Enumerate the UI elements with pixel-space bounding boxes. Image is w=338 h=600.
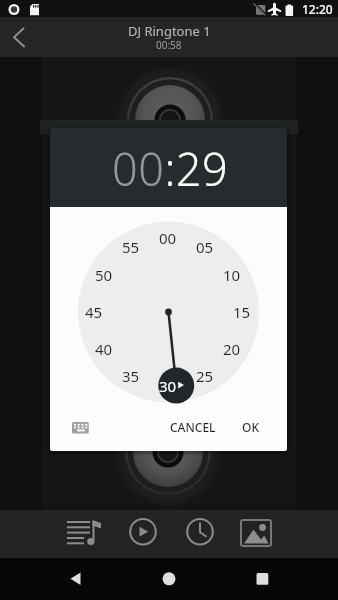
button[interactable]	[122, 514, 166, 554]
staticText: 12:20	[302, 1, 333, 17]
staticText: DJ Ringtone 1	[128, 22, 211, 40]
staticText: 10	[223, 265, 241, 285]
button[interactable]	[242, 560, 282, 598]
button[interactable]: OK	[225, 415, 275, 439]
staticText: 00:58	[156, 38, 182, 52]
staticText: 15	[233, 302, 251, 322]
staticText: 35	[122, 366, 140, 386]
staticText: 05	[196, 237, 214, 257]
staticText: 30	[159, 376, 177, 396]
staticText: 55	[122, 237, 140, 257]
button[interactable]: CANCEL	[153, 415, 233, 439]
staticText: 00	[159, 228, 177, 248]
staticText: 45	[85, 302, 103, 322]
button[interactable]	[55, 560, 95, 598]
button[interactable]	[64, 514, 108, 554]
staticText: OK	[242, 419, 259, 435]
button[interactable]	[234, 514, 278, 554]
button[interactable]	[4, 22, 34, 52]
button[interactable]	[178, 514, 222, 554]
staticText: 25	[196, 366, 214, 386]
staticText: 40	[95, 339, 113, 359]
button[interactable]	[60, 413, 98, 441]
staticText: 20	[223, 339, 241, 359]
button[interactable]	[149, 560, 189, 598]
staticText: 50	[95, 265, 113, 285]
staticText: 00:29	[112, 138, 229, 199]
staticText: CANCEL	[170, 419, 216, 435]
